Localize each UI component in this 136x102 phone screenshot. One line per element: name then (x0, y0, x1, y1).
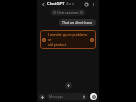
staticText: 4o (66, 1, 71, 7)
staticText: Chat sessions (57, 10, 79, 15)
button[interactable]: Attach (39, 94, 45, 100)
staticText: That an client hasn (62, 20, 93, 25)
button[interactable]: More options (90, 1, 96, 7)
button[interactable]: Scroll to bottom (65, 82, 72, 89)
button[interactable]: Warning (40, 30, 96, 49)
button[interactable]: Message (47, 93, 88, 100)
other: Warning (42, 38, 46, 42)
button[interactable]: Back (40, 1, 46, 7)
staticText: I wonder go on problems or old product. (48, 32, 88, 47)
staticText: ChatGPT (47, 1, 65, 7)
button[interactable]: Voice mode (90, 93, 97, 100)
button[interactable]: Voice input (82, 95, 86, 99)
other: Warning (90, 38, 94, 42)
button[interactable]: That an client hasn (59, 19, 96, 26)
button[interactable]: New chat (83, 1, 89, 7)
staticText: Message (49, 94, 82, 99)
button[interactable]: ChatGPT (47, 1, 74, 7)
button[interactable]: Chat sessions (50, 9, 86, 16)
